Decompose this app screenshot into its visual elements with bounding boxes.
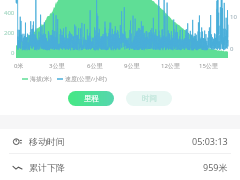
- staticText: 15公里: [199, 62, 218, 70]
- staticText: 200: [4, 29, 15, 37]
- staticText: 12公里: [161, 62, 180, 70]
- button[interactable]: 移动时间: [0, 129, 240, 153]
- staticText: 959米: [203, 161, 228, 173]
- staticText: 累计下降: [29, 162, 65, 173]
- button[interactable]: 里程: [68, 91, 114, 106]
- staticText: 0: [230, 45, 234, 53]
- staticText: 时间: [142, 94, 157, 103]
- staticText: 里程: [84, 94, 99, 103]
- staticText: 0: [11, 49, 15, 57]
- staticText: 速度(公里/小时): [65, 75, 107, 83]
- staticText: 05:03:13: [192, 135, 228, 147]
- staticText: 移动时间: [29, 136, 65, 147]
- staticText: 海拔(米): [30, 75, 52, 83]
- staticText: 10: [230, 13, 237, 21]
- button[interactable]: 时间: [126, 91, 172, 106]
- staticText: 400: [4, 9, 15, 17]
- staticText: 0米: [14, 62, 24, 70]
- staticText: 3公里: [49, 62, 65, 70]
- staticText: 9公里: [124, 62, 140, 70]
- staticText: 6公里: [87, 62, 103, 70]
- button[interactable]: 累计下降: [0, 154, 240, 180]
